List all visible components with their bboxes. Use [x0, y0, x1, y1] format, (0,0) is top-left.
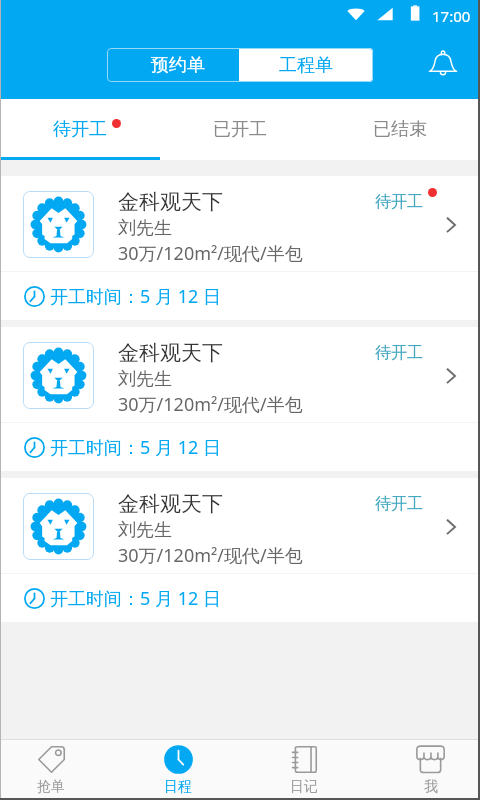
staticText: 我 — [424, 778, 438, 796]
button[interactable]: 预约单 — [107, 48, 239, 82]
staticText: 30万/120m²/现代/半包 — [118, 392, 303, 417]
staticText: 金科观天下 — [118, 189, 223, 215]
staticText: 刘先生 — [118, 368, 172, 391]
button[interactable]: 金科观天下 — [0, 176, 480, 320]
staticText: 已开工 — [213, 118, 267, 141]
button[interactable]: 日记 — [241, 740, 366, 800]
staticText: 待开工 — [53, 118, 107, 141]
staticText: 工程单 — [279, 54, 333, 77]
button[interactable]: 日程 — [115, 740, 241, 800]
button[interactable]: 已结束 — [320, 99, 480, 160]
staticText: 抢单 — [37, 778, 65, 796]
staticText: 30万/120m²/现代/半包 — [118, 241, 303, 266]
staticText: 预约单 — [151, 54, 205, 77]
staticText: 开工时间：5 月 12 日 — [50, 284, 221, 309]
button[interactable]: 已开工 — [160, 99, 320, 160]
staticText: 待开工 — [375, 494, 423, 514]
staticText: 日记 — [290, 778, 318, 796]
staticText: 30万/120m²/现代/半包 — [118, 543, 303, 568]
staticText: 开工时间：5 月 12 日 — [50, 586, 221, 611]
button[interactable]: Notifications — [421, 42, 465, 86]
button[interactable]: 待开工 — [0, 99, 160, 160]
staticText: 已结束 — [373, 118, 427, 141]
button[interactable]: 抢单 — [0, 740, 102, 800]
staticText: 金科观天下 — [118, 491, 223, 517]
staticText: 日程 — [164, 778, 192, 796]
button[interactable]: 我 — [366, 740, 480, 800]
staticText: 待开工 — [375, 192, 423, 212]
staticText: 17:00 — [432, 6, 471, 26]
button[interactable]: 金科观天下 — [0, 327, 480, 471]
staticText: 刘先生 — [118, 519, 172, 542]
staticText: 金科观天下 — [118, 340, 223, 366]
staticText: 开工时间：5 月 12 日 — [50, 435, 221, 460]
staticText: 待开工 — [375, 343, 423, 363]
staticText: 刘先生 — [118, 217, 172, 240]
button[interactable]: 工程单 — [239, 48, 373, 82]
button[interactable]: 金科观天下 — [0, 478, 480, 622]
